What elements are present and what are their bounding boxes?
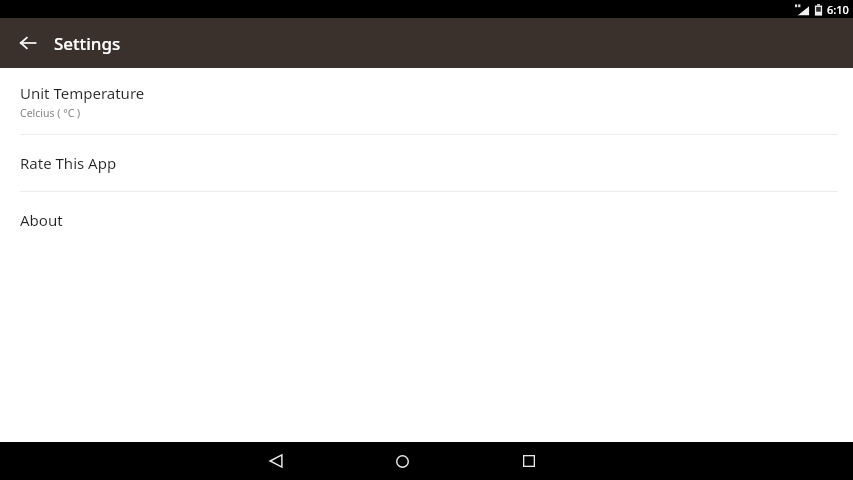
button[interactable]: Back (252, 442, 300, 480)
staticText: Unit Temperature (20, 83, 145, 103)
button[interactable]: Recent apps (505, 442, 553, 480)
button[interactable]: Rate This App (0, 135, 853, 191)
button[interactable]: About (0, 192, 853, 248)
button[interactable]: Back (10, 25, 46, 61)
staticText: Celcius ( °C ) (20, 106, 81, 120)
staticText: 6:10 (827, 2, 849, 17)
staticText: Settings (54, 32, 121, 55)
button[interactable]: Home (378, 442, 426, 480)
staticText: About (20, 210, 63, 230)
staticText: Rate This App (20, 153, 117, 173)
button[interactable]: Unit Temperature (0, 68, 853, 134)
